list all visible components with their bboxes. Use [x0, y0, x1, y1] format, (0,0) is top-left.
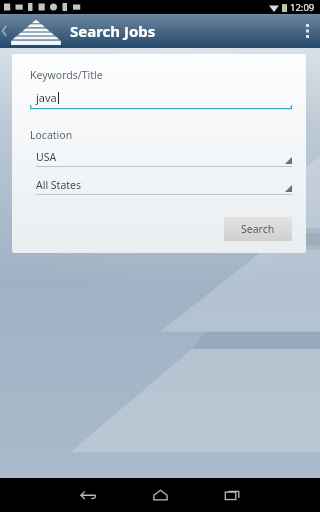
- button[interactable]: Up: [0, 14, 8, 48]
- staticText: All States: [36, 178, 82, 192]
- staticText: java: [36, 90, 57, 105]
- button[interactable]: java: [30, 90, 292, 110]
- button[interactable]: USA: [36, 150, 292, 167]
- button[interactable]: Back: [52, 478, 124, 512]
- staticText: Search Jobs: [70, 21, 156, 41]
- button[interactable]: All States: [36, 178, 292, 195]
- staticText: Keywords/Title: [30, 68, 103, 82]
- button[interactable]: Search: [224, 217, 292, 241]
- button[interactable]: Home: [124, 478, 196, 512]
- staticText: USA: [36, 150, 57, 164]
- button[interactable]: Recent apps: [196, 478, 268, 512]
- button[interactable]: Aerotek home: [10, 16, 62, 46]
- staticText: Location: [30, 128, 73, 142]
- staticText: 12:09: [290, 1, 315, 14]
- staticText: Search: [241, 222, 275, 236]
- button[interactable]: More options: [294, 14, 320, 48]
